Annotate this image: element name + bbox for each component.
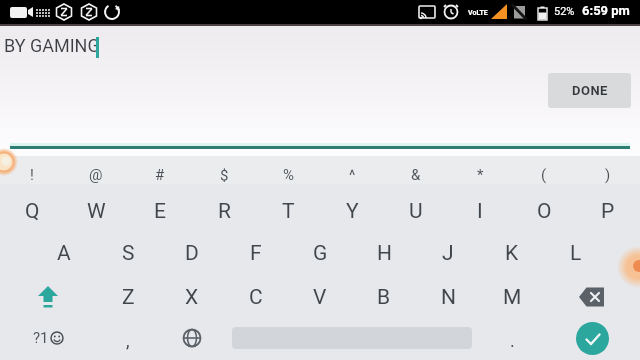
button[interactable]: W [64,189,128,233]
button[interactable]: H [352,231,416,275]
button[interactable]: A [32,231,96,275]
button[interactable]: S [96,231,160,275]
staticText: W [87,199,106,224]
staticText: U [409,199,423,224]
button[interactable]: G [288,231,352,275]
button[interactable]: * [448,161,512,189]
button[interactable]: # [128,161,192,189]
staticText: ) [605,166,611,184]
button[interactable] [544,316,640,360]
button[interactable]: @ [64,161,128,189]
staticText: K [505,241,519,266]
staticText: L [570,241,582,266]
button[interactable]: R [192,189,256,233]
staticText: & [411,166,421,184]
button[interactable] [224,316,480,360]
button[interactable]: I [448,189,512,233]
staticText: H [377,241,392,266]
staticText: ! [30,166,34,184]
staticText: Z [122,285,135,310]
staticText: ( [541,166,547,184]
button[interactable]: , [96,316,160,360]
staticText: Y [346,199,359,224]
staticText: % [283,166,294,184]
button[interactable]: & [384,161,448,189]
staticText: S [122,241,135,266]
button[interactable] [544,275,640,319]
button[interactable] [0,275,96,319]
button[interactable]: N [416,275,480,319]
staticText: ^ [349,166,356,184]
button[interactable]: P [576,189,640,233]
staticText: # [155,166,165,184]
staticText: M [503,285,522,310]
button[interactable]: DONE [548,73,631,108]
staticText: $ [220,166,229,184]
button[interactable]: Z [96,275,160,319]
staticText: ?1 [33,329,49,347]
button[interactable]: E [128,189,192,233]
staticText: X [185,285,199,310]
button[interactable]: V [288,275,352,319]
staticText: B [377,285,391,310]
button[interactable]: U [384,189,448,233]
button[interactable]: O [512,189,576,233]
staticText: N [441,285,456,310]
button[interactable]: F [224,231,288,275]
staticText: BY GAMING [4,35,100,56]
staticText: @ [89,166,103,184]
button[interactable]: Q [0,189,64,233]
button[interactable]: ! [0,161,64,189]
staticText: C [249,285,263,310]
staticText: P [601,199,615,224]
staticText: 6:59 pm [582,3,630,18]
staticText: * [477,166,484,184]
staticText: F [250,241,262,266]
button[interactable]: Y [320,189,384,233]
button[interactable]: J [416,231,480,275]
staticText: E [154,199,166,224]
staticText: VoLTE [468,9,488,17]
button[interactable]: B [352,275,416,319]
button[interactable]: D [160,231,224,275]
button[interactable]: ( [512,161,576,189]
staticText: J [442,241,454,266]
staticText: V [313,285,327,310]
staticText: , [126,330,130,351]
staticText: 52% [554,5,575,18]
button[interactable]: X [160,275,224,319]
button[interactable]: M [480,275,544,319]
button[interactable]: . [480,316,544,360]
button[interactable]: % [256,161,320,189]
staticText: Q [25,199,40,224]
staticText: R [218,199,231,224]
button[interactable]: ) [576,161,640,189]
staticText: T [282,199,295,224]
button[interactable]: ?1 [0,316,96,360]
button[interactable]: $ [192,161,256,189]
staticText: I [477,199,483,224]
button[interactable]: ^ [320,161,384,189]
button[interactable]: L [544,231,608,275]
staticText: DONE [572,83,608,98]
staticText: O [537,199,552,224]
staticText: . [510,330,515,351]
staticText: G [313,241,328,266]
button[interactable] [160,316,224,360]
staticText: D [185,241,199,266]
button[interactable]: C [224,275,288,319]
staticText: A [57,241,71,266]
button[interactable]: K [480,231,544,275]
button[interactable]: T [256,189,320,233]
